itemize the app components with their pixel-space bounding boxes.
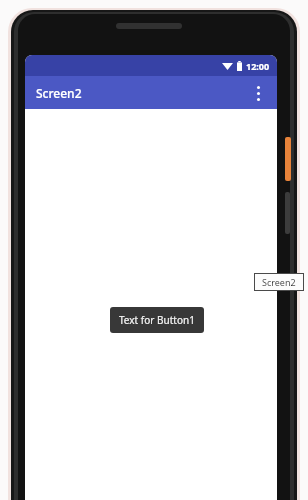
- staticText: Text for Button1: [119, 313, 195, 327]
- button[interactable]: Screen2: [254, 273, 304, 291]
- button[interactable]: Screen2: [25, 76, 277, 109]
- staticText: Screen2: [262, 276, 296, 288]
- button[interactable]: Text for Button1: [110, 307, 204, 333]
- staticText: Screen2: [36, 85, 82, 101]
- staticText: 12:00: [246, 60, 270, 72]
- button[interactable]: More options: [246, 81, 270, 105]
